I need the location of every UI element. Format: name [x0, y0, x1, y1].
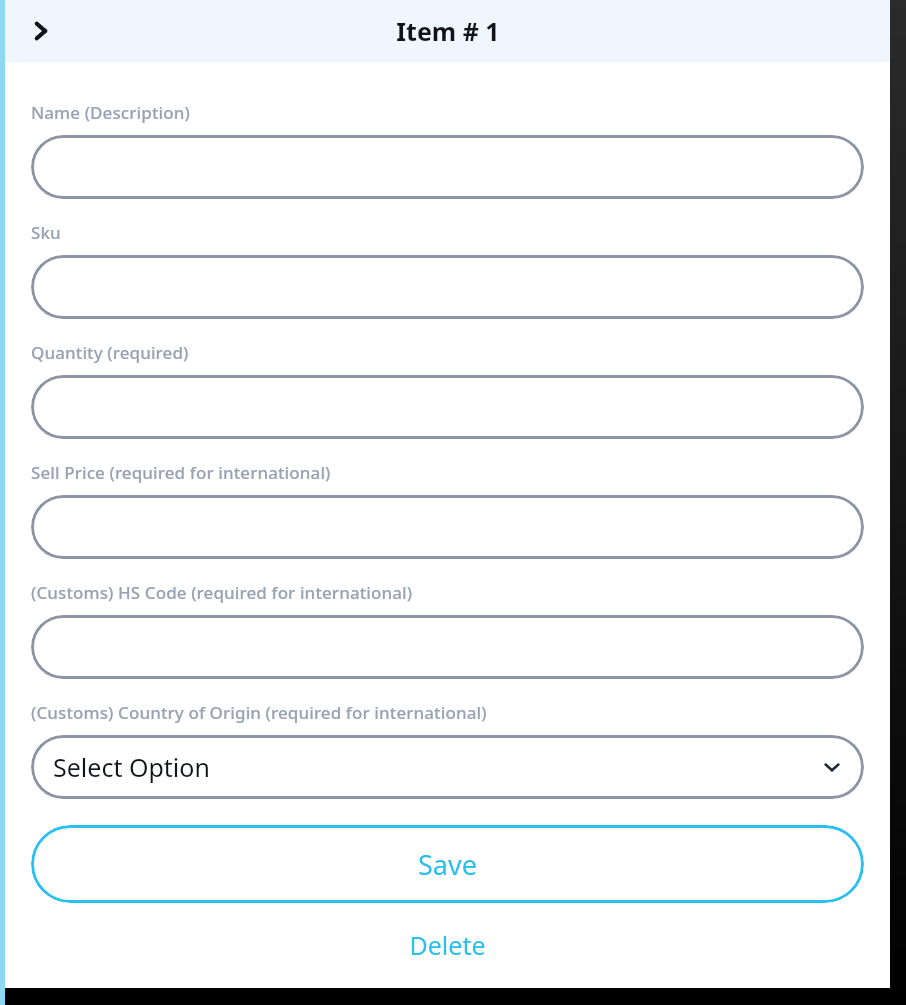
button[interactable]: [31, 495, 864, 559]
button[interactable]: Select Option: [31, 735, 864, 799]
staticText: (Customs) Country of Origin (required fo…: [31, 701, 487, 724]
staticText: (Customs) HS Code (required for internat…: [31, 581, 413, 604]
button[interactable]: [31, 255, 864, 319]
staticText: Item # 1: [396, 14, 500, 48]
staticText: Delete: [409, 928, 486, 962]
staticText: Quantity (required): [31, 341, 189, 364]
button[interactable]: [31, 375, 864, 439]
staticText: Sku: [31, 221, 61, 244]
staticText: Name (Description): [31, 101, 190, 124]
button[interactable]: [31, 615, 864, 679]
staticText: Select Option: [53, 750, 210, 784]
staticText: Save: [418, 846, 477, 883]
button[interactable]: Save: [31, 825, 864, 903]
staticText: Sell Price (required for international): [31, 461, 331, 484]
button[interactable]: Back: [19, 9, 63, 53]
button[interactable]: Delete: [31, 920, 864, 970]
button[interactable]: [31, 135, 864, 199]
